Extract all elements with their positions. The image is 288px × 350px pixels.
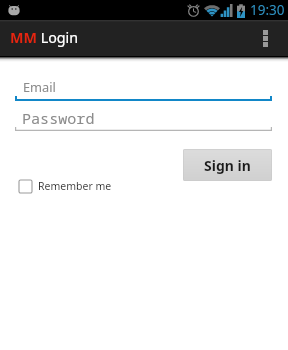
staticText: Email [23, 78, 56, 95]
staticText: MM Login [10, 28, 79, 47]
button[interactable]: Sign in [183, 149, 272, 181]
button[interactable]: Remember me [15, 175, 115, 197]
staticText: 19:30 [250, 1, 285, 19]
button[interactable]: Password [15, 107, 272, 131]
button[interactable]: More options [247, 20, 284, 56]
button[interactable]: MM Login [0, 20, 140, 56]
staticText: Sign in [204, 156, 251, 175]
staticText: Remember me [38, 179, 112, 193]
button[interactable]: Email [15, 76, 272, 101]
staticText: Password [22, 108, 95, 129]
